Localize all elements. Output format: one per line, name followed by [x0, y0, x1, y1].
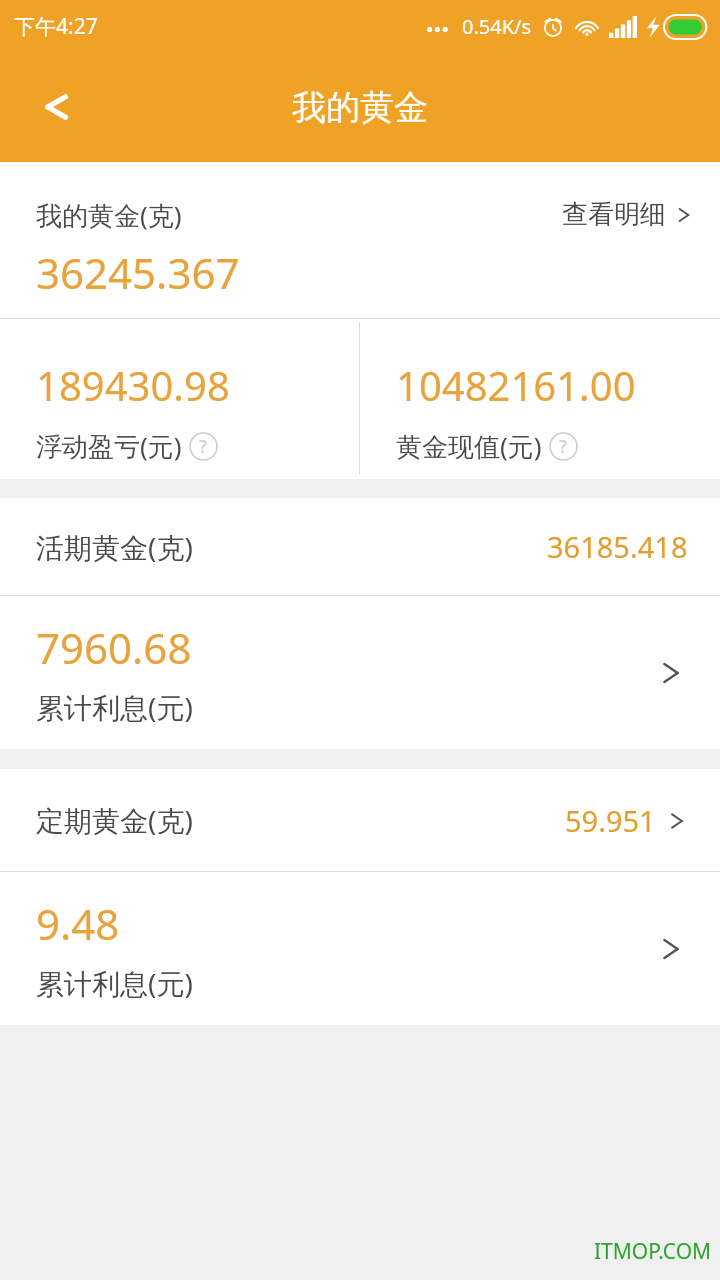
- button[interactable]: 189430.98: [0, 318, 359, 479]
- staticText: 累计利息(元): [36, 688, 193, 726]
- staticText: 7960.68: [36, 619, 192, 676]
- staticText: 下午4:27: [14, 12, 98, 41]
- button[interactable]: 查看明细: [558, 192, 698, 237]
- button[interactable]: 9.48: [0, 872, 720, 1025]
- staticText: 定期黄金(克): [36, 801, 193, 839]
- staticText: 浮动盈亏(元): [36, 428, 182, 464]
- staticText: 我的黄金(克): [36, 197, 182, 233]
- button[interactable]: Help: [188, 431, 218, 461]
- button[interactable]: 活期黄金(克): [0, 498, 720, 595]
- button[interactable]: Back: [18, 69, 94, 145]
- staticText: 累计利息(元): [36, 964, 193, 1002]
- staticText: ITMOP.COM: [594, 1237, 712, 1266]
- staticText: 36245.367: [36, 244, 240, 301]
- staticText: ?: [199, 434, 207, 459]
- staticText: 36185.418: [547, 527, 688, 566]
- staticText: 59.951: [565, 801, 656, 840]
- staticText: 9.48: [36, 895, 120, 952]
- button[interactable]: Help: [548, 431, 578, 461]
- staticText: 活期黄金(克): [36, 528, 193, 566]
- button[interactable]: 10482161.00: [360, 318, 720, 479]
- staticText: ?: [559, 434, 567, 459]
- button[interactable]: 定期黄金(克): [0, 769, 720, 871]
- staticText: 10482161.00: [396, 358, 636, 412]
- staticText: 189430.98: [36, 358, 230, 412]
- staticText: 我的黄金: [292, 86, 428, 129]
- staticText: 0.54K/s: [462, 13, 532, 40]
- staticText: 黄金现值(元): [396, 428, 542, 464]
- button[interactable]: 7960.68: [0, 596, 720, 749]
- staticText: 查看明细: [562, 198, 666, 231]
